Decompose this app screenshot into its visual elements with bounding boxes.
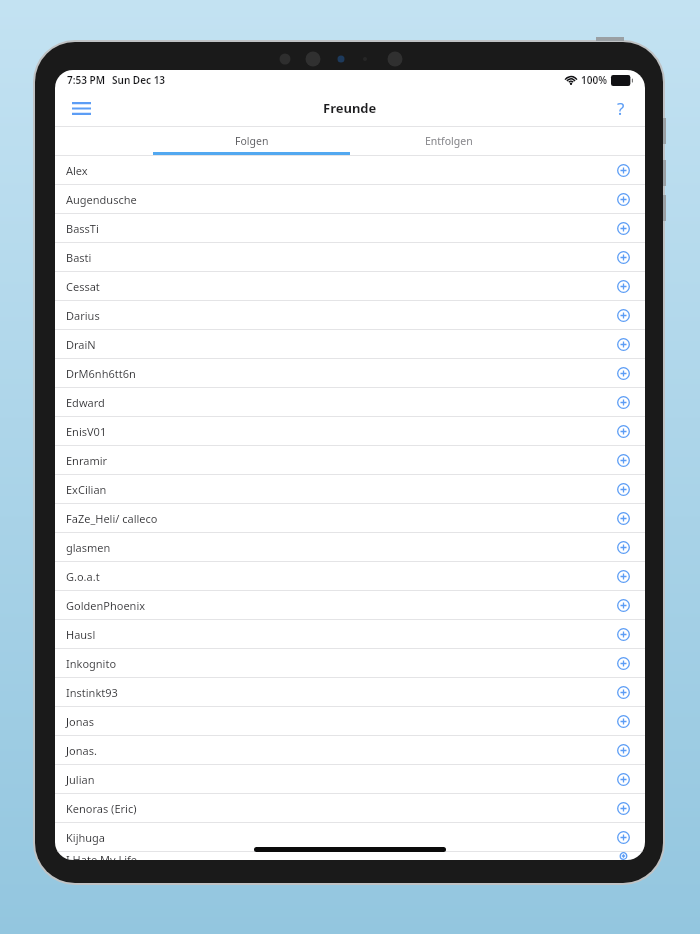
staticText: Folgen (235, 134, 269, 148)
staticText: DraiN (66, 337, 96, 352)
button[interactable]: Enramir (55, 446, 645, 474)
button[interactable]: Help (603, 90, 639, 126)
button[interactable]: Jonas. (55, 736, 645, 764)
button[interactable]: BassTi (55, 214, 645, 242)
staticText: glasmen (66, 540, 111, 555)
staticText: G.o.a.t (66, 569, 100, 584)
staticText: Kijhuga (66, 830, 106, 845)
staticText: Kenoras (Eric) (66, 801, 137, 816)
staticText: BassTi (66, 221, 99, 236)
button[interactable]: Kijhuga (55, 823, 645, 851)
staticText: Basti (66, 250, 92, 265)
button[interactable]: glasmen (55, 533, 645, 561)
button[interactable]: Cessat (55, 272, 645, 300)
button[interactable]: Add BassTi (612, 217, 634, 239)
staticText: Instinkt93 (66, 685, 118, 700)
button[interactable]: Menu (61, 90, 101, 126)
button[interactable]: Add EnisV01 (612, 420, 634, 442)
staticText: Alex (66, 163, 88, 178)
staticText: Cessat (66, 279, 100, 294)
staticText: Jonas. (66, 743, 97, 758)
button[interactable]: Instinkt93 (55, 678, 645, 706)
button[interactable]: Folgen (153, 127, 350, 155)
button[interactable]: Add G.o.a.t (612, 565, 634, 587)
button[interactable]: GoldenPhoenix (55, 591, 645, 619)
staticText: Freunde (323, 99, 377, 117)
staticText: ? (617, 97, 625, 120)
button[interactable]: Add Kijhuga (612, 826, 634, 848)
staticText: Inkognito (66, 656, 117, 671)
staticText: ExCilian (66, 482, 107, 497)
button[interactable]: Add DrM6nh6tt6n (612, 362, 634, 384)
button[interactable]: Inkognito (55, 649, 645, 677)
button[interactable]: Add Cessat (612, 275, 634, 297)
button[interactable]: Add FaZe_Heli/ calleco (612, 507, 634, 529)
staticText: FaZe_Heli/ calleco (66, 511, 158, 526)
staticText: GoldenPhoenix (66, 598, 146, 613)
button[interactable]: Add Julian (612, 768, 634, 790)
button[interactable]: Add ExCilian (612, 478, 634, 500)
button[interactable]: Add Inkognito (612, 652, 634, 674)
staticText: Jonas (66, 714, 94, 729)
button[interactable]: DrM6nh6tt6n (55, 359, 645, 387)
staticText: Darius (66, 308, 100, 323)
button[interactable]: Add Jonas (612, 710, 634, 732)
button[interactable]: I Hate My Life (55, 852, 645, 860)
button[interactable]: Edward (55, 388, 645, 416)
button[interactable]: EnisV01 (55, 417, 645, 445)
staticText: I Hate My Life (66, 852, 137, 860)
button[interactable]: Add GoldenPhoenix (612, 594, 634, 616)
staticText: Julian (66, 772, 95, 787)
staticText: Enramir (66, 453, 108, 468)
button[interactable]: Alex (55, 156, 645, 184)
staticText: Edward (66, 395, 105, 410)
staticText: 7:53 PM (67, 73, 105, 87)
button[interactable]: Add Alex (612, 159, 634, 181)
button[interactable]: Add Augendusche (612, 188, 634, 210)
button[interactable]: Add Instinkt93 (612, 681, 634, 703)
button[interactable]: Kenoras (Eric) (55, 794, 645, 822)
button[interactable]: Augendusche (55, 185, 645, 213)
button[interactable]: Add glasmen (612, 536, 634, 558)
staticText: Augendusche (66, 192, 137, 207)
staticText: DrM6nh6tt6n (66, 366, 136, 381)
staticText: Hausl (66, 627, 96, 642)
button[interactable]: DraiN (55, 330, 645, 358)
button[interactable]: FaZe_Heli/ calleco (55, 504, 645, 532)
staticText: Sun Dec 13 (112, 73, 166, 87)
button[interactable]: Hausl (55, 620, 645, 648)
button[interactable]: Add Basti (612, 246, 634, 268)
button[interactable]: Add Kenoras (Eric) (612, 797, 634, 819)
button[interactable]: ExCilian (55, 475, 645, 503)
button[interactable]: Add Darius (612, 304, 634, 326)
button[interactable]: Julian (55, 765, 645, 793)
button[interactable]: Add Hausl (612, 623, 634, 645)
button[interactable]: Add Edward (612, 391, 634, 413)
staticText: EnisV01 (66, 424, 107, 439)
button[interactable]: Entfolgen (350, 127, 547, 155)
button[interactable]: Jonas (55, 707, 645, 735)
button[interactable]: Add DraiN (612, 333, 634, 355)
staticText: 100% (581, 73, 607, 87)
button[interactable]: Basti (55, 243, 645, 271)
button[interactable]: Darius (55, 301, 645, 329)
button[interactable]: G.o.a.t (55, 562, 645, 590)
button[interactable]: Add Jonas. (612, 739, 634, 761)
staticText: Entfolgen (425, 134, 473, 148)
button[interactable]: Add I Hate My Life (612, 852, 634, 860)
button[interactable]: Add Enramir (612, 449, 634, 471)
